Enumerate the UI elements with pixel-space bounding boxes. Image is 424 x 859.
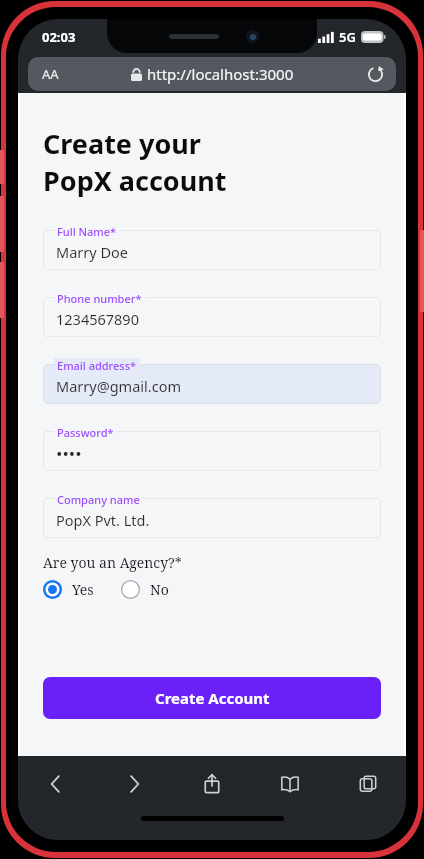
staticText: Are you an Agency?* — [43, 553, 182, 572]
button[interactable]: Forward — [112, 762, 156, 806]
staticText: Password* — [57, 425, 114, 440]
staticText: 5G — [339, 28, 356, 46]
button[interactable]: Tabs — [346, 762, 390, 806]
button[interactable]: Yes — [43, 580, 94, 599]
staticText: No — [150, 580, 169, 599]
button[interactable]: 1234567890 — [43, 291, 381, 331]
staticText: Marry Doe — [56, 242, 128, 262]
button[interactable]: Back — [34, 762, 78, 806]
staticText: Full Name* — [57, 224, 117, 239]
staticText: •••• — [56, 442, 82, 465]
button[interactable]: Create Account — [43, 677, 381, 719]
staticText: Company name — [57, 492, 140, 507]
button[interactable]: Bookmarks — [268, 762, 312, 806]
staticText: PopX account — [43, 162, 227, 199]
staticText: Email address* — [57, 358, 137, 373]
button[interactable]: No — [121, 580, 169, 599]
staticText: Phone number* — [57, 291, 142, 306]
button[interactable]: Share — [190, 762, 234, 806]
staticText: Create Account — [155, 688, 270, 708]
staticText: Create your — [43, 125, 201, 162]
staticText: 1234567890 — [56, 309, 139, 329]
staticText: Yes — [72, 580, 94, 599]
staticText: 02:03 — [42, 28, 76, 46]
staticText: http://localhost:3000 — [147, 64, 294, 84]
button[interactable]: Reload — [364, 63, 386, 85]
staticText: PopX Pvt. Ltd. — [56, 510, 150, 530]
button[interactable]: Marry@gmail.com — [43, 358, 381, 398]
button[interactable]: PopX Pvt. Ltd. — [43, 492, 381, 532]
button[interactable]: Marry Doe — [43, 224, 381, 264]
staticText: Marry@gmail.com — [56, 376, 181, 396]
staticText: AA — [42, 65, 59, 83]
button[interactable]: •••• — [43, 425, 381, 465]
button[interactable]: AA — [28, 57, 396, 91]
